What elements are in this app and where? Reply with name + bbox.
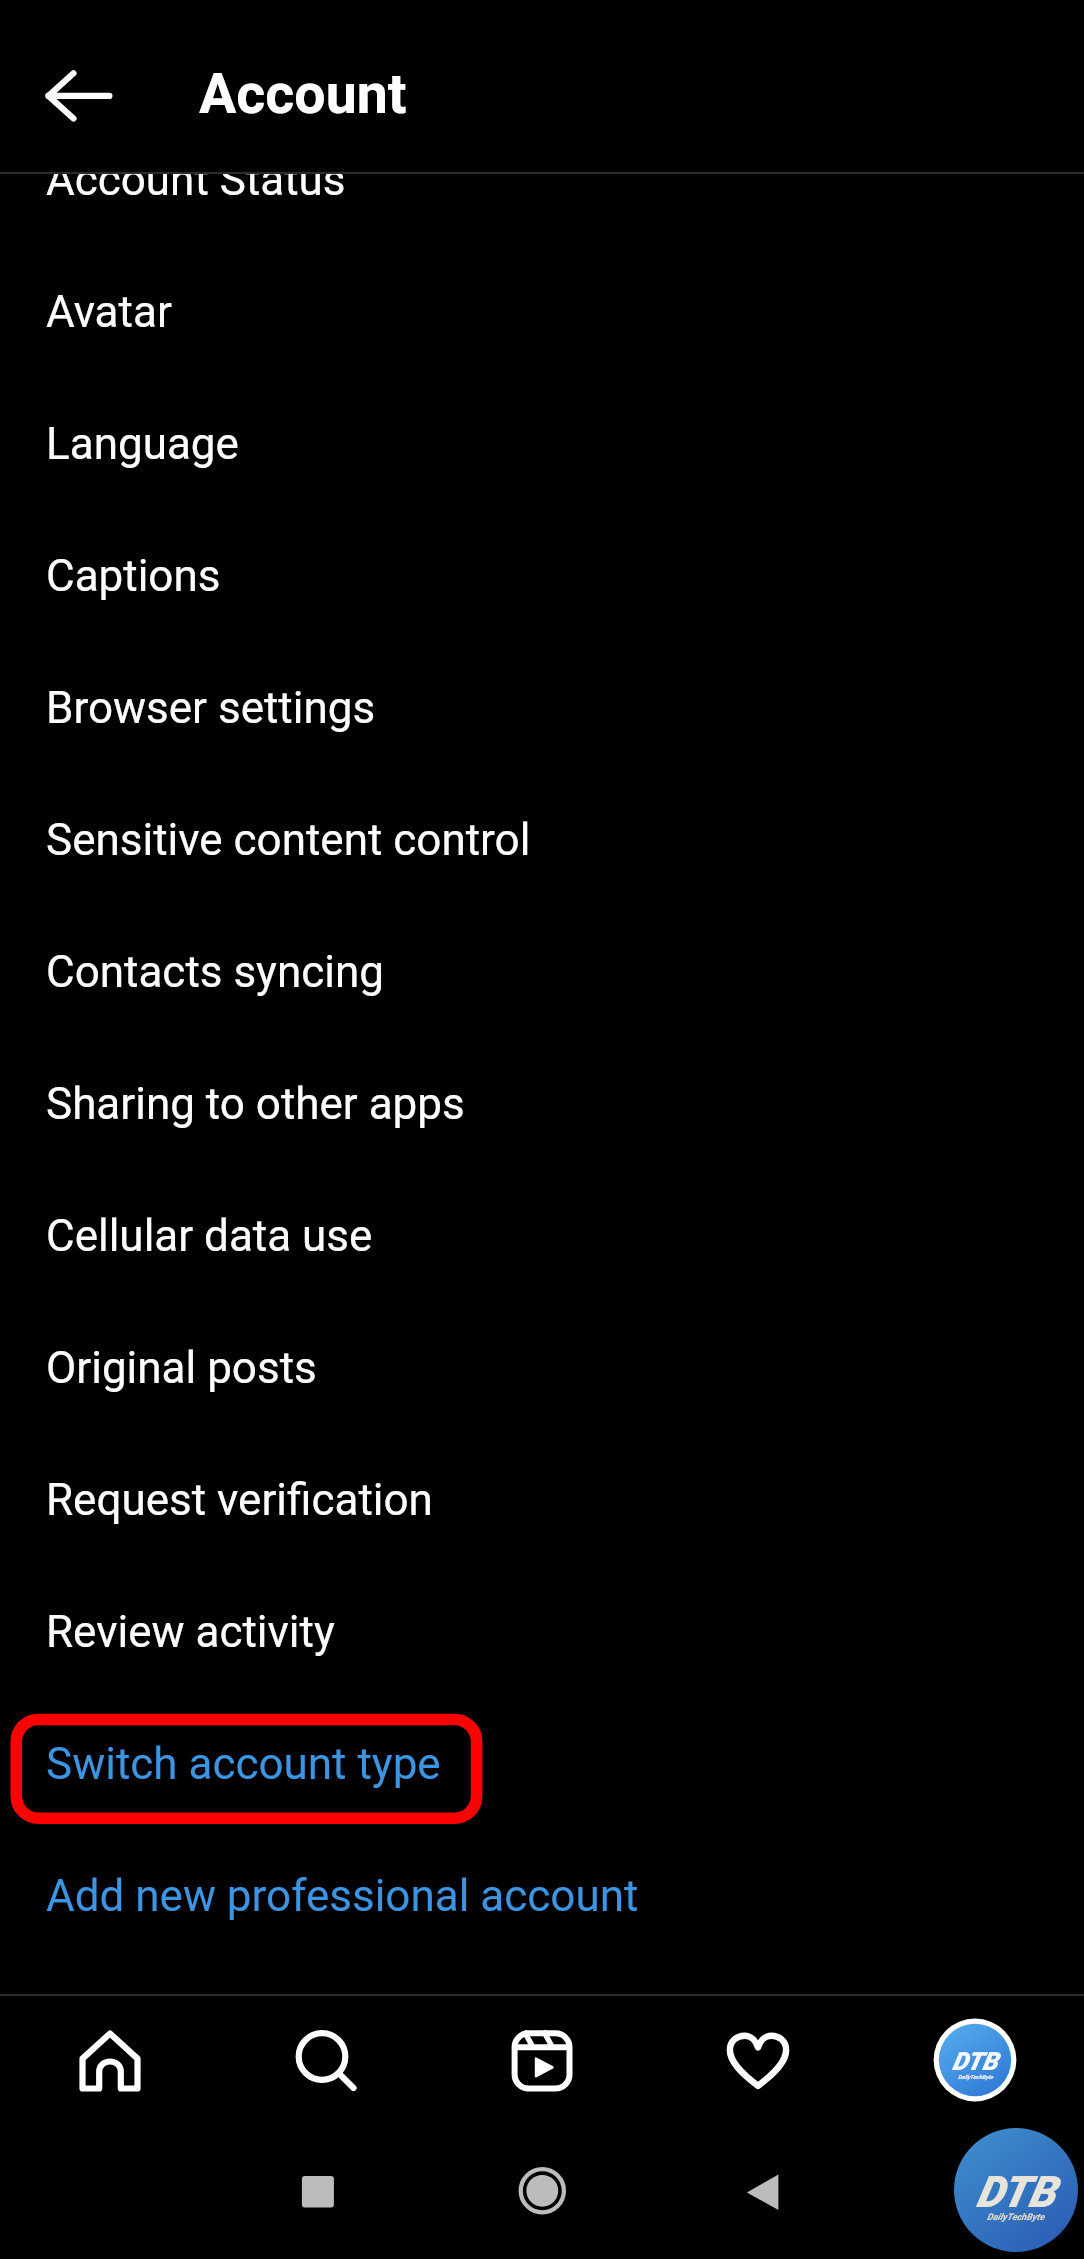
button[interactable]: Review activity	[0, 1564, 1084, 1696]
staticText: Sensitive content control	[46, 814, 531, 866]
staticText: Switch account type	[46, 1738, 441, 1790]
button[interactable]: Home	[60, 2010, 160, 2110]
staticText: Account	[199, 62, 407, 127]
staticText: Request verification	[46, 1474, 433, 1526]
button[interactable]: Request verification	[0, 1432, 1084, 1564]
staticText: Original posts	[46, 1342, 317, 1394]
button[interactable]: Reels	[491, 2010, 591, 2110]
button[interactable]: Home	[510, 2159, 575, 2224]
button[interactable]: Profile	[934, 2019, 1016, 2101]
staticText: Add new professional account	[46, 1870, 639, 1922]
button[interactable]: Language	[0, 376, 1084, 508]
staticText: Contacts syncing	[46, 946, 384, 998]
staticText: Avatar	[46, 286, 172, 338]
staticText: DTB	[952, 2047, 998, 2076]
button[interactable]: Captions	[0, 508, 1084, 640]
staticText: DailyTechByte	[958, 2074, 993, 2081]
staticText: Language	[46, 418, 239, 470]
button[interactable]: Cellular data use	[0, 1168, 1084, 1300]
button[interactable]: Back	[27, 53, 113, 139]
button[interactable]: Switch account type	[0, 1696, 1084, 1828]
staticText: Browser settings	[46, 682, 376, 734]
button[interactable]: Sensitive content control	[0, 772, 1084, 904]
button[interactable]: Add new professional account	[0, 1828, 1084, 1960]
button[interactable]: Search	[276, 2010, 376, 2110]
button[interactable]: Account Status	[0, 172, 1084, 244]
button[interactable]: Avatar	[0, 244, 1084, 376]
button[interactable]: Sharing to other apps	[0, 1036, 1084, 1168]
button[interactable]: Activity	[708, 2010, 808, 2110]
staticText: Captions	[46, 550, 221, 602]
staticText: Cellular data use	[46, 1210, 373, 1262]
button[interactable]: Contacts syncing	[0, 904, 1084, 1036]
button[interactable]: Original posts	[0, 1300, 1084, 1432]
button[interactable]: Browser settings	[0, 640, 1084, 772]
button[interactable]: Back	[730, 2159, 795, 2224]
button[interactable]: Recent apps	[285, 2159, 350, 2224]
staticText: DailyTechByte	[987, 2211, 1045, 2222]
staticText: Sharing to other apps	[46, 1078, 465, 1130]
staticText: Review activity	[46, 1606, 335, 1658]
staticText: Account Status	[46, 172, 346, 206]
staticText: DTB	[976, 2167, 1056, 2218]
